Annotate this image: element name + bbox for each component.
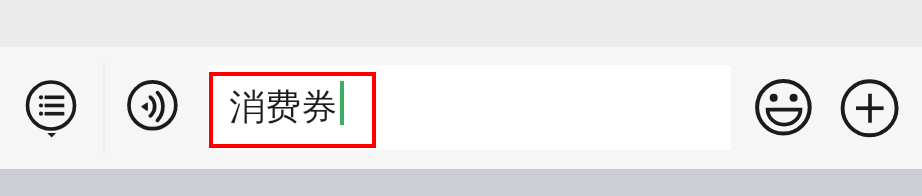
button[interactable]: Voice input: [126, 78, 180, 132]
button[interactable]: [208, 65, 731, 150]
staticText: 消费券: [229, 84, 337, 129]
button[interactable]: Emoji: [754, 77, 814, 137]
button[interactable]: Add: [840, 78, 900, 138]
button[interactable]: Message list: [14, 64, 88, 148]
